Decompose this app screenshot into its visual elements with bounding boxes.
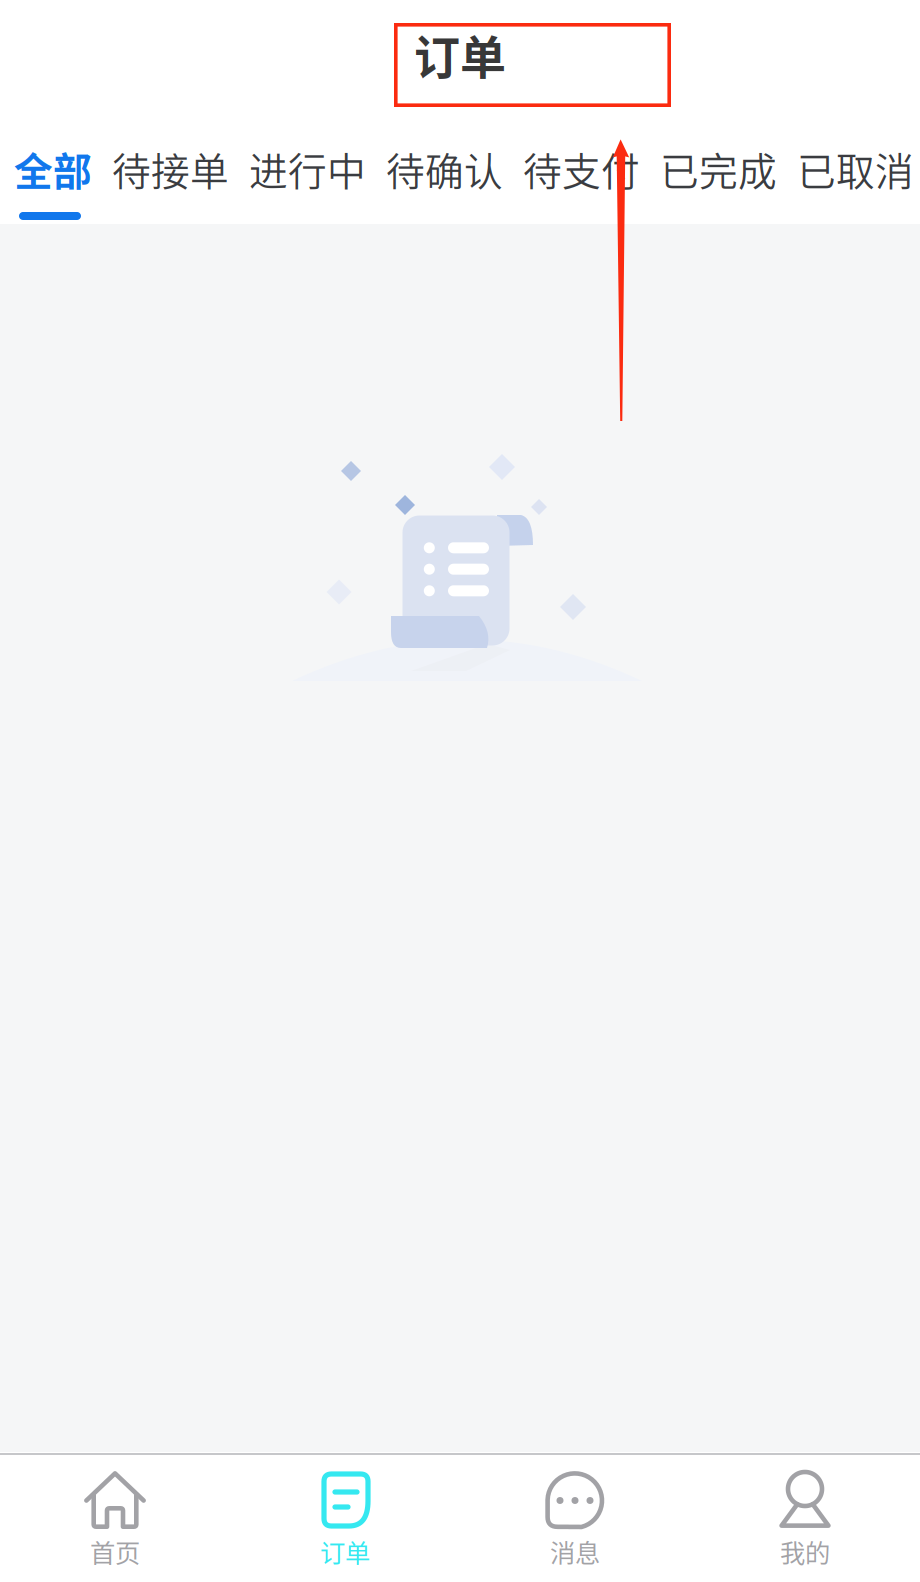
staticText: 消息 bbox=[550, 1533, 600, 1570]
staticText: 进行中 bbox=[249, 141, 366, 197]
button[interactable]: 待确认 bbox=[376, 128, 513, 224]
button[interactable]: 已取消 bbox=[787, 128, 920, 224]
staticText: 我的 bbox=[780, 1533, 830, 1570]
staticText: 首页 bbox=[90, 1533, 140, 1570]
button[interactable]: 订单 bbox=[230, 1454, 460, 1582]
button[interactable]: 待接单 bbox=[102, 128, 239, 224]
staticText: 已完成 bbox=[660, 141, 777, 197]
button[interactable]: 待支付 bbox=[513, 128, 650, 224]
button[interactable]: 全部 bbox=[4, 128, 102, 224]
staticText: 待确认 bbox=[386, 141, 503, 197]
button[interactable]: 首页 bbox=[0, 1454, 230, 1582]
staticText: 待支付 bbox=[523, 141, 640, 197]
staticText: 已取消 bbox=[797, 141, 914, 197]
button[interactable]: 我的 bbox=[690, 1454, 920, 1582]
staticText: 订单 bbox=[414, 21, 506, 87]
button[interactable]: 已完成 bbox=[650, 128, 787, 224]
staticText: 订单 bbox=[320, 1533, 370, 1570]
button[interactable]: 消息 bbox=[460, 1454, 690, 1582]
staticText: 待接单 bbox=[112, 141, 229, 197]
staticText: 全部 bbox=[14, 141, 92, 197]
button[interactable]: 进行中 bbox=[239, 128, 376, 224]
